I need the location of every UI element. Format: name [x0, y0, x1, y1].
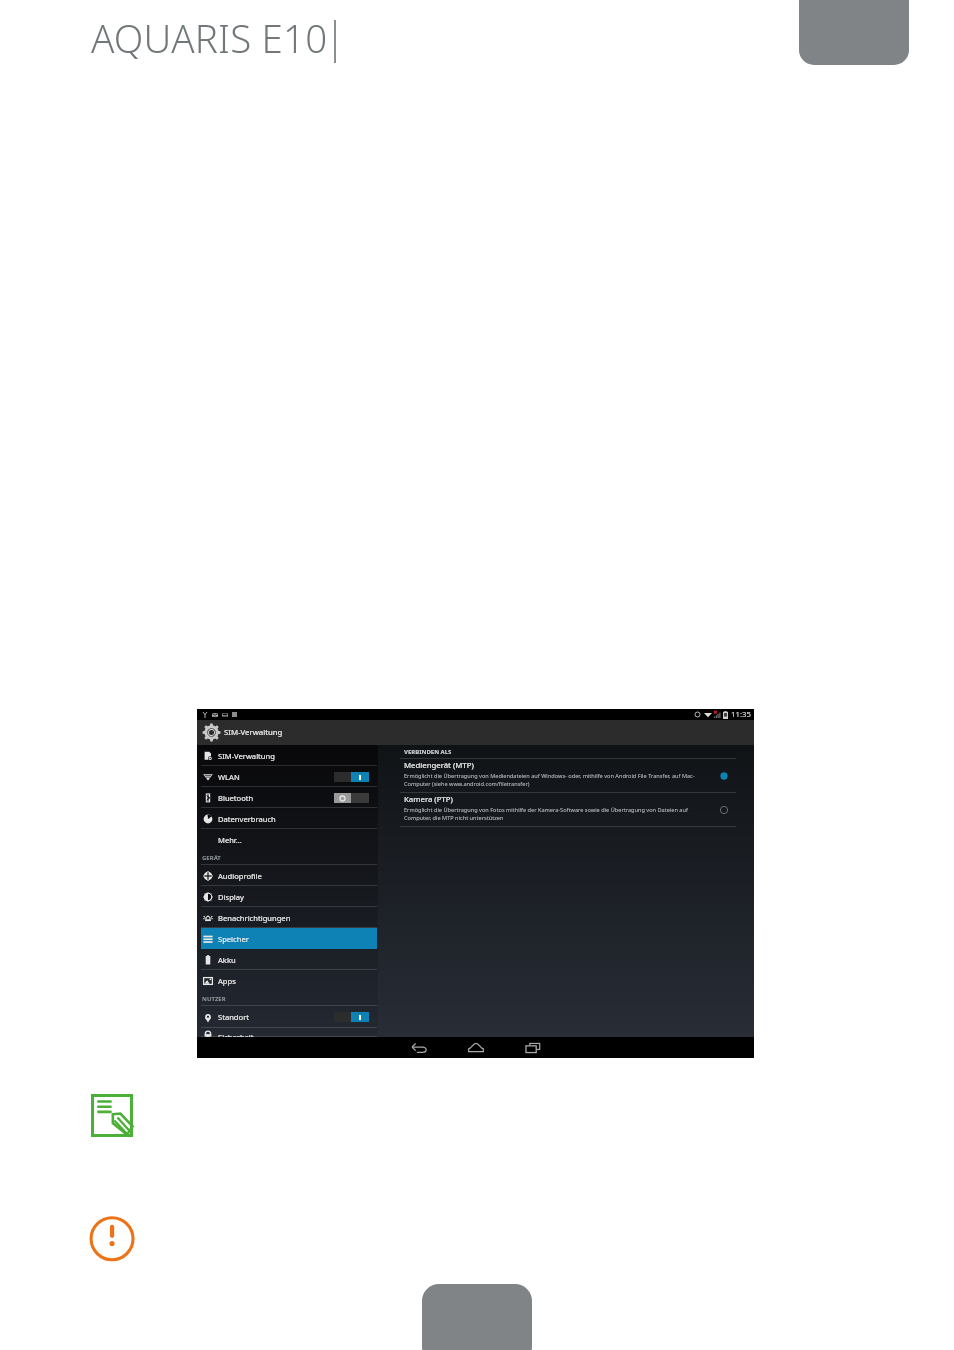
staticText: 11:35 [731, 709, 751, 720]
button[interactable]: Home [447, 1037, 504, 1058]
button[interactable]: Warning [90, 1216, 135, 1261]
staticText: Datenverbrauch [218, 814, 276, 824]
staticText: GERÄT [202, 854, 221, 862]
staticText: Benachrichtigungen [218, 913, 291, 923]
button[interactable]: WLAN [197, 766, 378, 787]
button[interactable]: Kamera (PTP) [400, 793, 736, 826]
staticText: NUTZER [202, 995, 226, 1003]
staticText: Mehr... [218, 835, 242, 845]
staticText: Akku [218, 955, 236, 965]
staticText: Speicher [218, 934, 249, 944]
button[interactable]: Audioprofile [197, 865, 378, 886]
button[interactable]: Apps [197, 970, 378, 991]
staticText: Ermöglicht die Übertragung von Mediendat… [404, 772, 699, 788]
button[interactable]: Switch on [334, 1012, 369, 1022]
button[interactable]: Display [197, 886, 378, 907]
button[interactable]: SIM-Verwaltung [197, 720, 754, 745]
button[interactable]: Note [91, 1094, 133, 1137]
button[interactable]: Recents [504, 1037, 561, 1058]
button[interactable]: Speicher [197, 928, 378, 949]
button[interactable]: Back [390, 1037, 447, 1058]
button[interactable]: Datenverbrauch [197, 808, 378, 829]
staticText: SIM-Verwaltung [224, 727, 283, 738]
button[interactable]: Switch off [334, 793, 369, 803]
button[interactable]: Benachrichtigungen [197, 907, 378, 928]
staticText: Kamera (PTP) [404, 794, 453, 805]
button[interactable]: Switch on [334, 772, 369, 782]
button[interactable]: Standort [197, 1006, 378, 1028]
staticText: Ermöglicht die Übertragung von Fotos mit… [404, 806, 699, 822]
staticText: Display [218, 892, 244, 902]
button[interactable]: Bluetooth [197, 787, 378, 808]
button[interactable]: Mediengerät (MTP) [400, 759, 736, 792]
button[interactable]: Mehr... [197, 829, 378, 850]
staticText: Mediengerät (MTP) [404, 760, 474, 771]
staticText: Audioprofile [218, 871, 262, 881]
staticText: WLAN [218, 772, 240, 782]
button[interactable]: Akku [197, 949, 378, 970]
button[interactable]: Sicherheit [197, 1028, 378, 1037]
staticText: SIM-Verwaltung [218, 751, 275, 761]
staticText: Bluetooth [218, 793, 254, 803]
button[interactable]: SIM-Verwaltung [197, 745, 378, 766]
staticText: VERBINDEN ALS [404, 748, 452, 756]
staticText: Standort [218, 1012, 250, 1022]
staticText: Apps [218, 976, 236, 986]
staticText: Sicherheit [218, 1032, 254, 1037]
staticText: AQUARIS E10 [91, 12, 328, 64]
